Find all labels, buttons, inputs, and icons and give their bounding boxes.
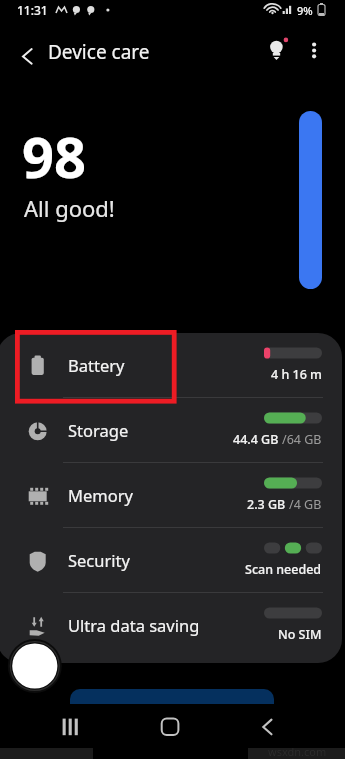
- button[interactable]: Back: [248, 706, 290, 748]
- button[interactable]: Screen recorder: [4, 636, 66, 698]
- button[interactable]: [70, 689, 274, 704]
- button[interactable]: Tips: [256, 28, 296, 68]
- staticText: Ultra data saving: [68, 614, 200, 636]
- button[interactable]: Ultra data saving: [0, 593, 342, 658]
- staticText: Device care: [48, 39, 150, 65]
- staticText: 4 h 16 m: [271, 366, 322, 383]
- staticText: /4 GB: [289, 496, 322, 513]
- staticText: /64 GB: [282, 431, 322, 448]
- button[interactable]: Recents: [52, 706, 94, 748]
- staticText: 11:31: [17, 2, 48, 18]
- staticText: No SIM: [278, 626, 322, 643]
- button[interactable]: Home: [150, 706, 192, 748]
- staticText: 2.3 GB: [247, 496, 289, 513]
- button[interactable]: Back: [8, 28, 48, 68]
- staticText: 98: [22, 118, 87, 194]
- staticText: Scan needed: [245, 561, 322, 578]
- staticText: Battery: [68, 354, 125, 376]
- button[interactable]: Security: [0, 528, 342, 593]
- button[interactable]: More options: [296, 28, 336, 68]
- staticText: 44.4 GB: [233, 431, 282, 448]
- staticText: Memory: [68, 484, 133, 506]
- staticText: Security: [68, 549, 130, 571]
- button[interactable]: Battery: [0, 333, 342, 398]
- staticText: All good!: [24, 193, 115, 223]
- staticText: wsxdn.com: [268, 744, 327, 759]
- staticText: 9%: [297, 3, 313, 18]
- button[interactable]: Storage: [0, 398, 342, 463]
- staticText: Storage: [68, 419, 129, 441]
- button[interactable]: Memory: [0, 463, 342, 528]
